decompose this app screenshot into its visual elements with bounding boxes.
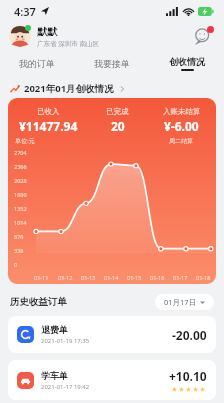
button[interactable]: 我要接单	[74, 50, 149, 76]
staticText: 01-14	[104, 274, 119, 281]
staticText: 2366	[14, 163, 27, 170]
staticText: 我的订单	[19, 58, 55, 69]
staticText: 默默	[37, 25, 57, 38]
staticText: 20	[111, 118, 125, 134]
staticText: 退费单	[41, 324, 68, 335]
staticText: 已收入	[37, 107, 60, 116]
button[interactable]: 退费单	[8, 316, 216, 353]
button[interactable]: 我的订单	[0, 50, 74, 76]
button[interactable]: 2021年01月创收情况	[10, 79, 224, 98]
staticText: 周二结算	[169, 137, 193, 145]
button[interactable]: 01月17日	[155, 294, 214, 310]
staticText: 01-17	[173, 274, 188, 281]
staticText: 1352	[14, 205, 27, 212]
staticText: ¥-6.00	[164, 118, 199, 134]
staticText: 2021-01-19 17:35	[41, 337, 90, 345]
staticText: 01-16	[150, 274, 165, 281]
button[interactable]: Messages	[191, 24, 215, 48]
staticText: 1014	[14, 219, 27, 226]
staticText: -20.00	[172, 327, 207, 343]
staticText: 创收情况	[169, 56, 205, 67]
staticText: 2028	[14, 177, 27, 184]
staticText: 4:37	[14, 4, 36, 19]
staticText: 01-18	[196, 274, 211, 281]
staticText: 我要接单	[94, 58, 130, 69]
staticText: 01-13	[81, 274, 96, 281]
staticText: +10.10	[169, 368, 207, 384]
staticText: 2704	[14, 149, 27, 156]
staticText: 已完成	[106, 107, 129, 116]
staticText: 0	[14, 261, 18, 268]
staticText: 01-11	[34, 274, 49, 281]
staticText: 学车单	[41, 370, 68, 381]
staticText: 2021-01-17 19:42	[41, 383, 90, 391]
staticText: 1690	[14, 191, 27, 198]
button[interactable]: 创收情况	[149, 50, 224, 76]
staticText: 676	[14, 233, 24, 240]
staticText: 历史收益订单	[10, 296, 67, 308]
staticText: ¥11477.94	[19, 118, 78, 134]
staticText: 338	[14, 247, 24, 254]
staticText: 01-15	[127, 274, 142, 281]
staticText: 01-12	[58, 274, 73, 281]
button[interactable]: 学车单	[8, 360, 216, 400]
staticText: 2021年01月创收情况	[24, 82, 114, 95]
staticText: 广东省 深圳市 南山区	[37, 39, 99, 48]
staticText: 入账未结算	[163, 107, 201, 116]
staticText: 单位:元	[15, 137, 35, 145]
staticText: 01月17日	[164, 297, 197, 307]
